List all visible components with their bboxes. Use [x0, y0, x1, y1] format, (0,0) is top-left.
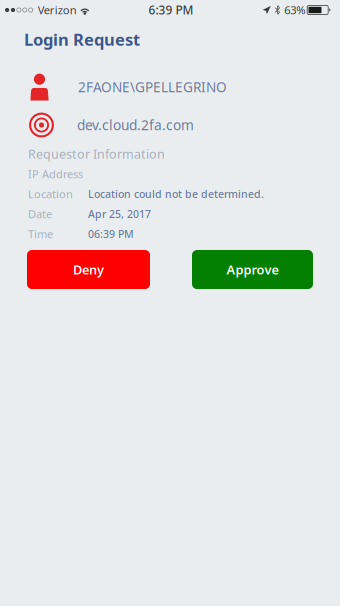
staticText: dev.cloud.2fa.com: [77, 116, 194, 134]
staticText: Approve: [226, 261, 278, 278]
staticText: Deny: [73, 261, 104, 278]
staticText: Requestor Information: [28, 145, 165, 162]
staticText: Date: [28, 206, 52, 222]
staticText: Location could not be determined.: [88, 187, 264, 201]
staticText: 6:39 PM: [148, 2, 193, 18]
staticText: Login Request: [24, 28, 140, 50]
staticText: 2FAONE\GPELLEGRINO: [78, 78, 227, 96]
staticText: 06:39 PM: [88, 227, 134, 241]
staticText: 63%: [284, 2, 305, 18]
staticText: IP Address: [28, 166, 83, 182]
staticText: Verizon: [38, 2, 77, 18]
staticText: Location: [28, 186, 73, 202]
staticText: Time: [28, 226, 53, 242]
button[interactable]: Deny: [27, 250, 150, 289]
staticText: Apr 25, 2017: [88, 207, 151, 221]
button[interactable]: Approve: [192, 250, 313, 289]
